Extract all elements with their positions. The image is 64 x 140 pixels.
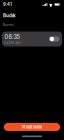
button[interactable]: Přidat budík xyxy=(4,123,60,131)
staticText: 06:35 xyxy=(4,33,19,40)
button[interactable]: 06:35 xyxy=(2,31,62,46)
staticText: Buzení xyxy=(3,23,14,27)
staticText: každý den xyxy=(4,41,21,44)
staticText: 9:41 xyxy=(3,2,12,7)
staticText: Přidat budík xyxy=(22,125,42,129)
staticText: Budík xyxy=(3,13,16,18)
